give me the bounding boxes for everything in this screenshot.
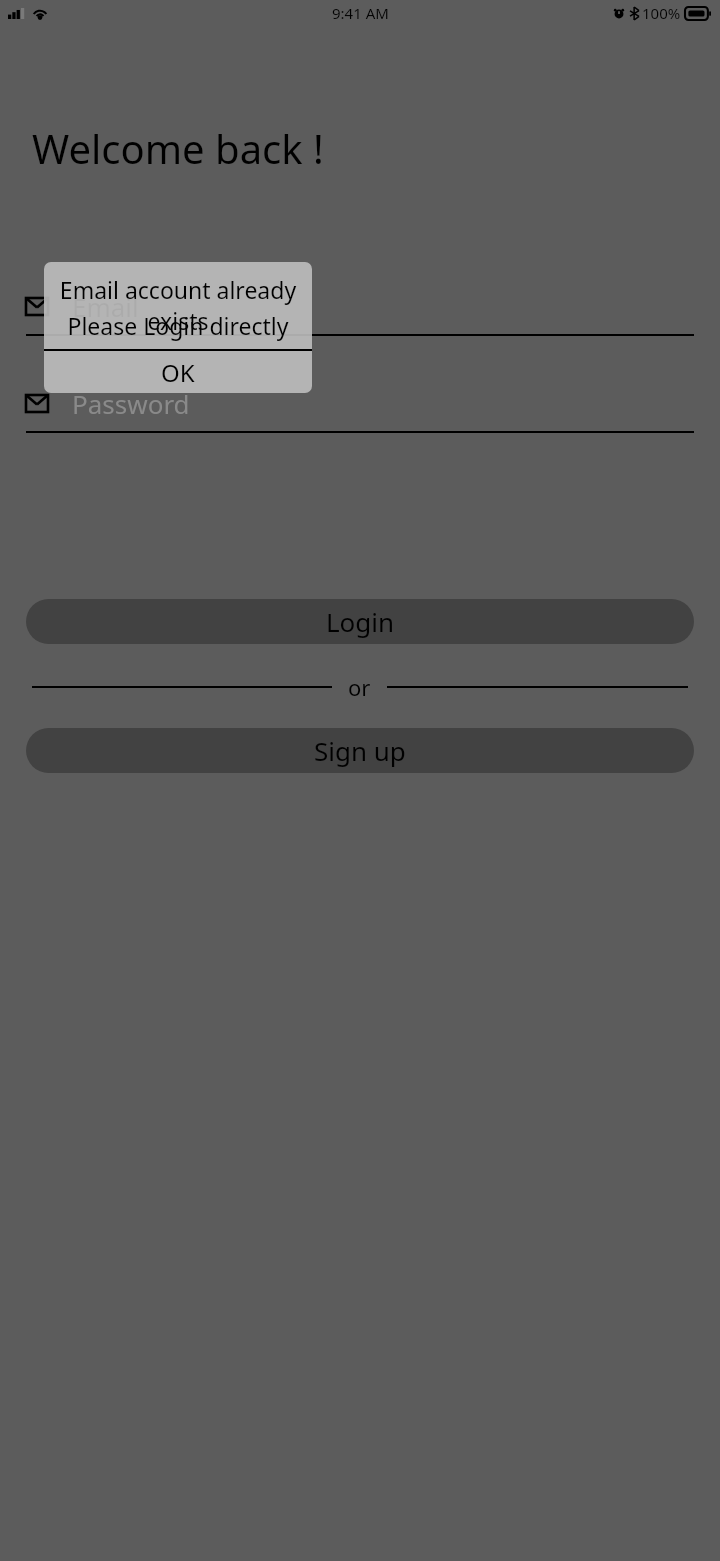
staticText: Email account already exists — [44, 274, 312, 336]
staticText: Login — [326, 604, 395, 639]
staticText: Password — [72, 386, 190, 421]
button[interactable]: Login — [26, 599, 694, 644]
other: Email — [26, 395, 48, 412]
staticText: Please Login directly — [44, 310, 312, 341]
staticText: OK — [161, 356, 195, 389]
staticText: 100% — [642, 3, 681, 23]
staticText: 9:41 AM — [332, 3, 389, 23]
staticText: Sign up — [314, 733, 406, 768]
staticText: Welcome back ! — [32, 121, 324, 175]
button[interactable]: Sign up — [26, 728, 694, 773]
staticText: or — [348, 672, 371, 702]
other: Email — [26, 298, 48, 315]
button[interactable]: Email — [0, 386, 720, 433]
button[interactable]: Email — [0, 289, 720, 336]
staticText: Email — [72, 289, 139, 324]
button[interactable]: OK — [44, 351, 312, 393]
